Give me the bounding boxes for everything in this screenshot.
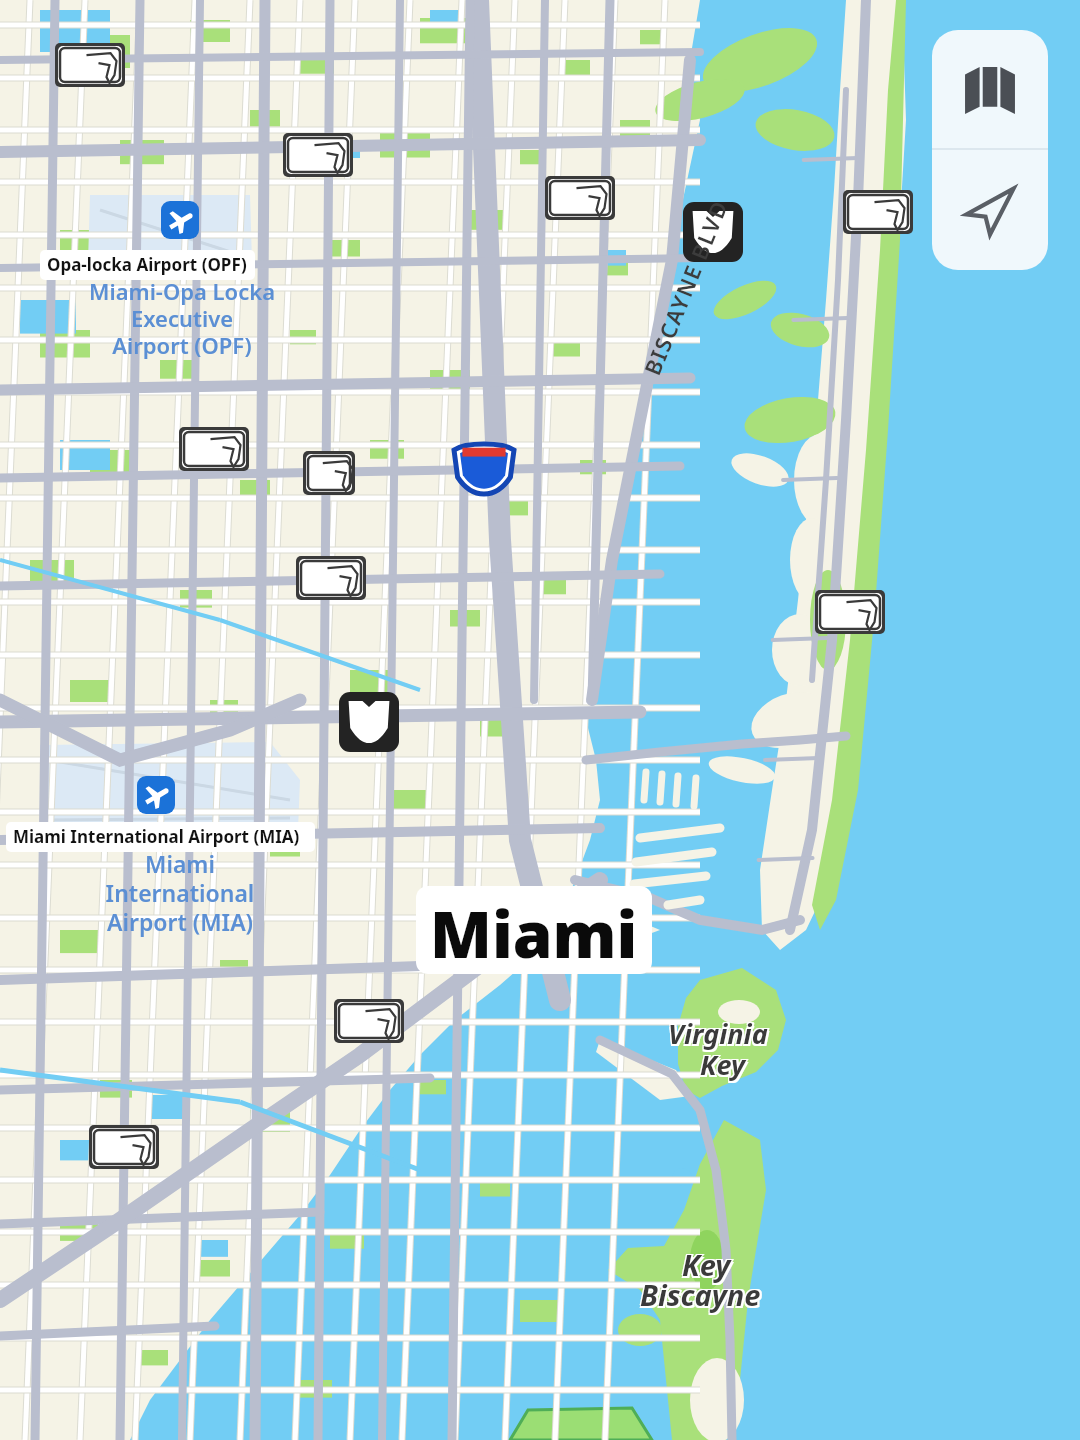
- button[interactable]: Opa-locka Airport (OPF): [40, 250, 255, 280]
- staticText: Virginia: [667, 1014, 767, 1051]
- staticText: Virginia: [668, 1015, 768, 1052]
- staticText: Key: [682, 1245, 731, 1284]
- staticText: Biscayne: [640, 1275, 761, 1314]
- button[interactable]: Airport: [137, 776, 175, 814]
- staticText: Key: [702, 1045, 748, 1082]
- staticText: Biscayne: [639, 1277, 760, 1316]
- button[interactable]: Airport: [161, 201, 199, 239]
- staticText: Opa-locka Airport (OPF): [47, 253, 247, 276]
- staticText: Key: [699, 1045, 745, 1082]
- staticText: Biscayne: [639, 1274, 760, 1313]
- staticText: BISCAYNE BLVD: [637, 195, 734, 379]
- button[interactable]: Map type: [932, 30, 1048, 149]
- button[interactable]: My location: [932, 151, 1048, 270]
- staticText: Miami International Airport (MIA): [13, 825, 300, 848]
- staticText: Virginia: [667, 1017, 767, 1054]
- staticText: Virginia: [670, 1017, 770, 1054]
- staticText: Key: [684, 1247, 733, 1286]
- staticText: Miami International Airport (MIA): [60, 848, 300, 968]
- staticText: Key: [681, 1244, 730, 1283]
- staticText: Biscayne: [642, 1274, 763, 1313]
- staticText: Key: [699, 1048, 745, 1085]
- button[interactable]: Miami International Airport (MIA): [6, 822, 315, 852]
- staticText: Key: [702, 1048, 748, 1085]
- staticText: Key: [700, 1046, 746, 1083]
- staticText: Miami-Opa Locka Executive Airport (OPF): [62, 276, 302, 396]
- staticText: Miami: [430, 890, 638, 974]
- staticText: Biscayne: [642, 1277, 763, 1316]
- staticText: Key: [684, 1244, 733, 1283]
- staticText: Key: [681, 1247, 730, 1286]
- staticText: Virginia: [670, 1014, 770, 1051]
